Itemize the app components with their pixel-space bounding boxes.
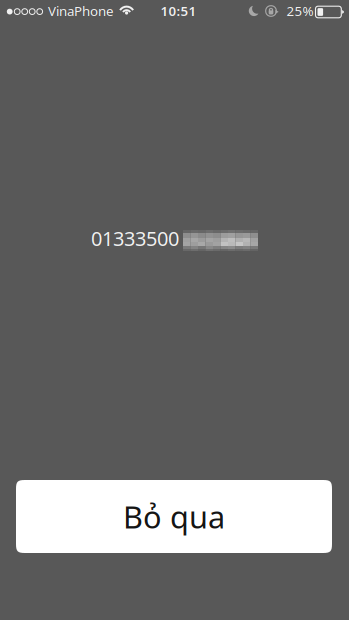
staticText: VinaPhone <box>48 2 114 20</box>
staticText: 10:51 <box>160 2 196 20</box>
staticText: 25% <box>286 2 313 20</box>
staticText: Bỏ qua <box>123 496 225 537</box>
staticText: 01333500 <box>91 225 179 252</box>
button[interactable]: Bỏ qua <box>16 480 332 553</box>
